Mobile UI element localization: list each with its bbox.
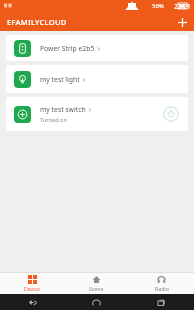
staticText: my test switch: [40, 105, 86, 114]
button[interactable]: Device: [0, 273, 64, 294]
button[interactable]: Scene: [64, 273, 129, 294]
staticText: Scene: [89, 285, 104, 292]
button[interactable]: Add device: [174, 14, 190, 30]
button[interactable]: Home: [64, 294, 129, 310]
button[interactable]: Radio: [129, 273, 194, 294]
staticText: Radio: [155, 285, 169, 292]
staticText: 56%: [152, 2, 164, 10]
button[interactable]: my test light: [6, 65, 188, 93]
button[interactable]: Recent apps: [129, 294, 194, 310]
staticText: my test light: [40, 75, 80, 84]
button[interactable]: my test switch: [6, 97, 188, 131]
button[interactable]: Toggle power: [162, 105, 180, 123]
staticText: EFAMILYCLOUD: [7, 17, 67, 27]
staticText: Device: [24, 285, 40, 292]
staticText: Turned on: [40, 116, 67, 124]
staticText: Power Strip e2b5: [40, 44, 95, 53]
staticText: 22:21: [174, 2, 191, 11]
button[interactable]: Back: [0, 294, 64, 310]
button[interactable]: Power Strip e2b5: [6, 35, 188, 61]
